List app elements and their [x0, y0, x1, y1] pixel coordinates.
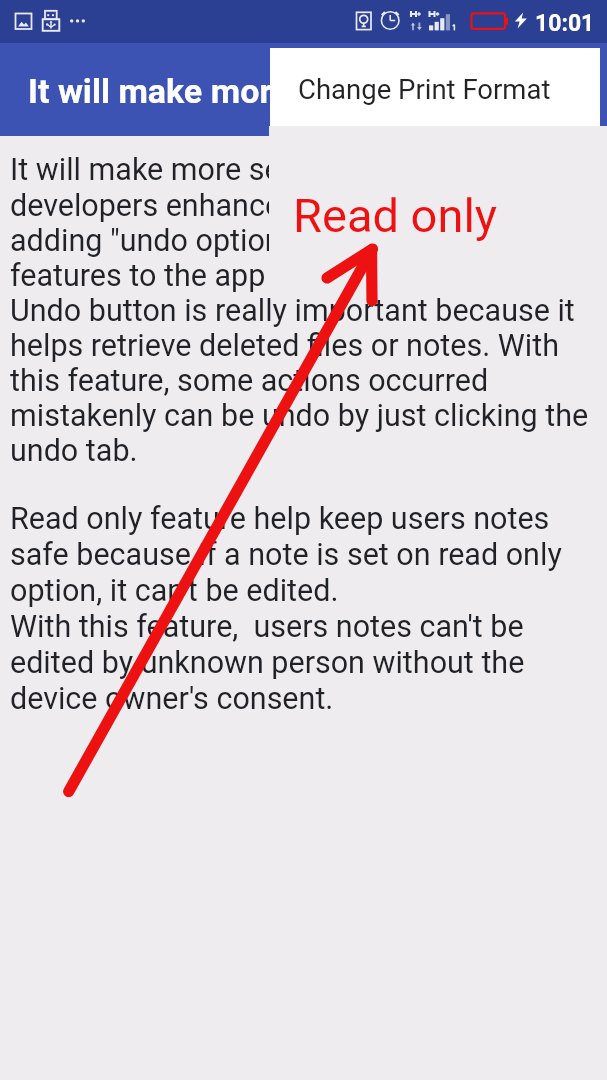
staticText: Read only feature help keep users notes …	[10, 501, 597, 717]
staticText: Read only	[293, 188, 498, 243]
button[interactable]: Change Print Format	[270, 48, 600, 126]
button[interactable]: It will make more sense if note taking	[0, 43, 607, 136]
other: Annotation arrow	[0, 0, 607, 1080]
staticText: 10:01	[535, 10, 595, 37]
staticText: Change Print Format	[298, 73, 551, 105]
staticText: It will make more sense if note taking a…	[10, 152, 597, 468]
staticText: It will make more sense if note taking	[28, 71, 600, 111]
